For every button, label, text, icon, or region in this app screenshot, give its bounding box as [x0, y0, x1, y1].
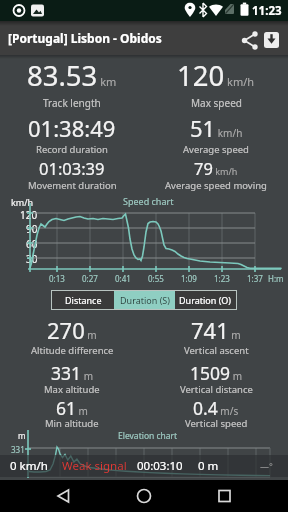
- staticText: 120 km/h: [177, 57, 255, 91]
- staticText: 331: [11, 444, 25, 455]
- staticText: Vertical distance: [180, 383, 253, 396]
- staticText: 60: [26, 237, 38, 249]
- staticText: 1:37: [247, 273, 263, 284]
- staticText: Max speed: [191, 96, 242, 110]
- staticText: 270 m: [47, 315, 97, 343]
- staticText: 0:55: [148, 273, 164, 284]
- button[interactable]: [260, 27, 282, 49]
- button[interactable]: [Portugal] Lisbon - Obidos: [8, 21, 162, 55]
- staticText: Duration (O): [179, 294, 232, 306]
- staticText: Duration (S): [120, 294, 170, 306]
- staticText: Weak signal: [62, 458, 127, 474]
- staticText: Elevation chart: [118, 430, 178, 442]
- button[interactable]: [96, 480, 192, 512]
- staticText: Max altitude: [44, 383, 100, 396]
- staticText: Min altitude: [45, 417, 99, 430]
- staticText: Speed chart: [123, 195, 174, 207]
- staticText: km/h: [11, 196, 34, 208]
- staticText: 90: [26, 222, 38, 234]
- staticText: 120: [20, 208, 38, 220]
- staticText: 11:23: [252, 3, 282, 19]
- staticText: Altitude difference: [31, 344, 114, 357]
- staticText: Average speed: [183, 143, 249, 156]
- staticText: Track length: [43, 96, 101, 110]
- staticText: 1:23: [214, 273, 230, 284]
- staticText: 30: [26, 252, 38, 264]
- staticText: 1509 m: [190, 361, 242, 382]
- staticText: 83.53 km: [27, 57, 117, 91]
- button[interactable]: [192, 480, 288, 512]
- staticText: 01:03:39: [39, 157, 105, 177]
- staticText: 0:41: [115, 273, 131, 284]
- staticText: 741 m: [191, 315, 241, 343]
- staticText: 0 m: [198, 458, 219, 474]
- staticText: 0.4 m/s: [193, 396, 239, 417]
- staticText: 79 km/h: [194, 157, 238, 177]
- staticText: Vertical speed: [185, 417, 248, 430]
- staticText: 1:09: [181, 273, 197, 284]
- staticText: 0 km/h: [10, 458, 48, 474]
- staticText: —°: [260, 460, 273, 472]
- staticText: Distance: [65, 294, 102, 306]
- staticText: Average speed moving: [165, 179, 267, 192]
- button[interactable]: Duration (O): [175, 291, 236, 309]
- staticText: 331 m: [51, 361, 93, 382]
- staticText: Record duration: [36, 143, 108, 156]
- staticText: 0:27: [82, 273, 98, 284]
- staticText: 61 m: [56, 396, 88, 417]
- staticText: m: [18, 430, 26, 441]
- staticText: 00:03:10: [137, 458, 183, 474]
- staticText: 0:13: [49, 273, 65, 284]
- staticText: H:m: [268, 273, 284, 284]
- staticText: 01:38:49: [28, 113, 116, 141]
- button[interactable]: Duration (S): [114, 291, 175, 309]
- button[interactable]: [238, 27, 260, 49]
- button[interactable]: Distance: [52, 291, 114, 309]
- staticText: Movement duration: [28, 179, 117, 192]
- staticText: Vertical ascent: [184, 344, 249, 357]
- staticText: [Portugal] Lisbon - Obidos: [8, 30, 162, 46]
- staticText: 51 km/h: [190, 113, 243, 141]
- button[interactable]: [0, 480, 96, 512]
